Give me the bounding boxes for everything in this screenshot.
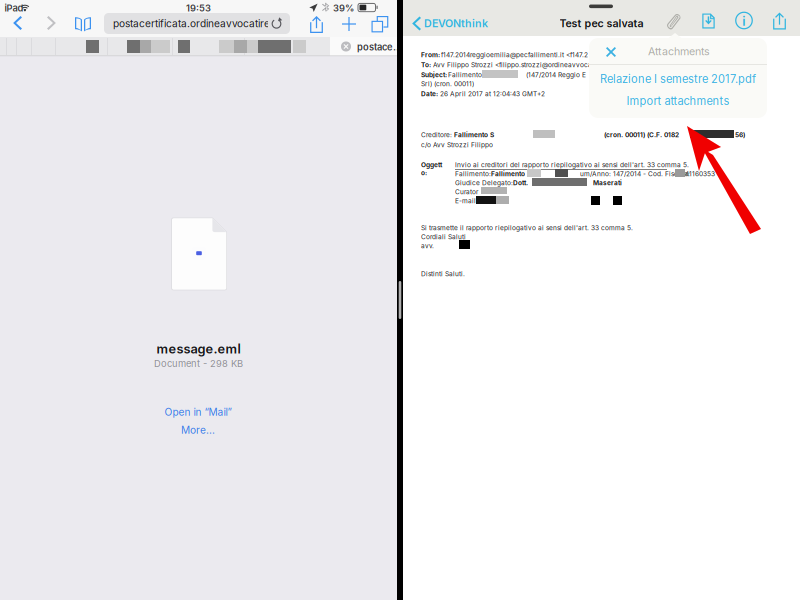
staticText: Oggett — [421, 161, 442, 169]
staticText: Distinti Saluti. — [421, 270, 465, 278]
staticText: Fallimento S — [454, 131, 494, 139]
staticText: um/Anno: 147/2014 - Cod. Fiscale: — [580, 170, 690, 178]
staticText: (147/2014 Reggio E — [526, 71, 586, 79]
staticText: 26 April 2017 at 12:04:43 GMT+2 — [440, 90, 545, 98]
button[interactable]: Close — [601, 42, 621, 62]
staticText: (cron. 00011) (C.F. 0182 — [604, 131, 679, 139]
staticText: Dott. — [513, 179, 528, 187]
staticText: Srl) (cron. 00011) — [421, 80, 474, 88]
button[interactable]: Back — [8, 11, 34, 35]
staticText: 39% — [333, 2, 354, 14]
button[interactable]: Share — [769, 10, 793, 34]
staticText: Avv Filippo Strozzi <filippo.strozzi@ord… — [433, 61, 594, 69]
staticText: To: — [421, 61, 431, 69]
staticText: Fallimento — [448, 71, 482, 79]
staticText: 41160353 — [685, 170, 715, 178]
staticText: postacertificata.ordineavvocatireggio — [113, 17, 290, 30]
staticText: Document - 298 KB — [154, 358, 243, 369]
button[interactable]: Close Tab — [339, 39, 353, 53]
staticText: Giudice Delegato: — [455, 179, 513, 187]
staticText: message.eml — [156, 341, 240, 356]
staticText: 56) — [735, 131, 745, 139]
staticText: From: — [421, 51, 440, 59]
staticText: More... — [181, 424, 215, 436]
staticText: Test pec salvata — [559, 17, 643, 30]
button[interactable]: Import — [699, 10, 723, 34]
button[interactable]: Open in “Mail” — [128, 404, 268, 420]
button[interactable]: Relazione I semestre 2017.pdf — [591, 70, 765, 88]
staticText: f147.2014reggioemilia@pecfallimenti.it <… — [441, 51, 588, 59]
staticText: DEVONthink — [424, 17, 488, 30]
staticText: i — [742, 12, 746, 29]
staticText: postace... — [357, 41, 402, 53]
staticText: Import attachments — [626, 94, 729, 108]
button[interactable]: Import attachments — [591, 92, 765, 110]
button[interactable]: Show Tabs — [367, 11, 393, 35]
staticText: Creditore: — [421, 131, 452, 139]
staticText: Invio ai creditori del rapporto riepilog… — [455, 161, 689, 169]
staticText: iPad — [4, 2, 23, 14]
button[interactable]: New Tab — [336, 11, 362, 35]
staticText: c/o Avv Strozzi Filippo — [421, 141, 493, 149]
staticText: Cordiali Saluti — [421, 233, 466, 241]
staticText: E-mail — [455, 197, 476, 205]
button[interactable]: Info — [734, 10, 758, 34]
button[interactable]: Attachments — [663, 10, 687, 34]
button[interactable]: Bookmarks — [70, 11, 96, 35]
staticText: o: — [421, 169, 427, 177]
staticText: Fallimento — [491, 170, 525, 178]
staticText: Relazione I semestre 2017.pdf — [600, 72, 756, 86]
staticText: Maserati — [593, 179, 622, 187]
button[interactable]: Forward — [39, 11, 65, 35]
button[interactable]: Share — [303, 11, 329, 35]
staticText: avv. — [421, 242, 434, 250]
staticText: Si trasmette il rapporto riepilogativo a… — [421, 224, 633, 232]
staticText: Fallimento: — [455, 170, 491, 178]
button[interactable]: DEVONthink — [411, 12, 507, 36]
staticText: Attachments — [648, 45, 710, 58]
staticText: Subject: — [421, 71, 447, 79]
staticText: Open in “Mail” — [164, 406, 231, 418]
button[interactable]: postacertificata.ordineavvocatireggio — [104, 13, 290, 34]
staticText: Date: — [421, 90, 438, 98]
button[interactable]: More... — [128, 422, 268, 438]
staticText: Curator — [455, 188, 478, 196]
staticText: 19:53 — [186, 2, 211, 14]
